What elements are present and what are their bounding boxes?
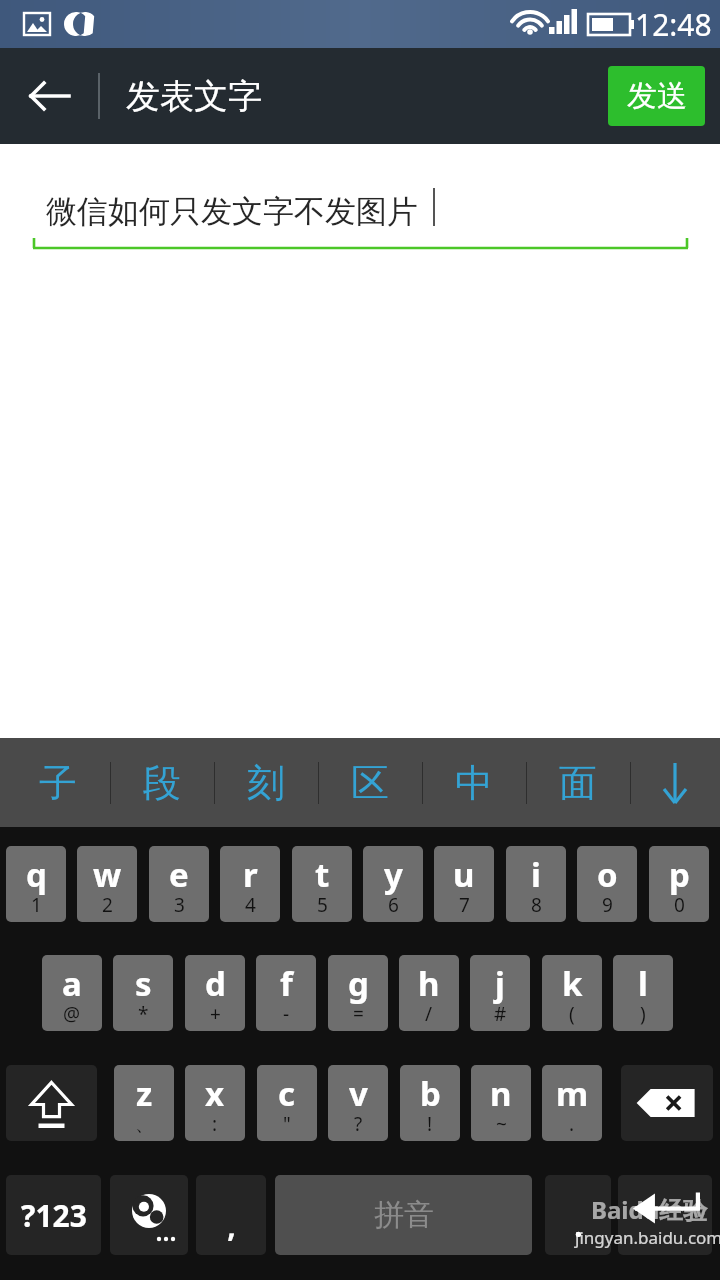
button[interactable]: 中 [422,738,526,827]
staticText: ( [569,1001,575,1027]
button[interactable]: x [185,1065,245,1141]
button[interactable]: g [328,955,388,1031]
staticText: 发送 [627,77,687,115]
button[interactable]: y [363,846,423,922]
button[interactable]: 拼音 [275,1175,532,1255]
button[interactable]: q [6,846,66,922]
staticText: 区 [351,759,389,807]
staticText: v [349,1071,368,1116]
staticText: p [669,852,690,897]
button[interactable]: p [649,846,709,922]
staticText: - [283,1001,290,1027]
staticText: d [205,961,226,1006]
staticText: s [135,961,152,1006]
staticText: k [562,961,583,1006]
button[interactable]: . [545,1175,611,1255]
staticText: 发表文字 [126,75,262,118]
staticText: 9 [602,892,613,918]
staticText: 刻 [247,759,285,807]
button[interactable]: f [256,955,316,1031]
staticText: 面 [559,759,597,807]
button[interactable]: 发送 [608,66,705,126]
button[interactable]: 刻 [214,738,318,827]
staticText: h [418,961,440,1006]
button[interactable]: v [328,1065,388,1141]
button[interactable]: 面 [526,738,630,827]
staticText: 1 [31,892,42,918]
button[interactable]: a [42,955,102,1031]
button[interactable]: , [196,1175,266,1255]
button[interactable]: k [542,955,602,1031]
button[interactable]: b [400,1065,460,1141]
staticText: . [569,1111,575,1137]
staticText: 子 [39,759,77,807]
staticText: / [425,1001,433,1027]
staticText: 0 [674,892,685,918]
button[interactable]: n [471,1065,531,1141]
button[interactable]: i [506,846,566,922]
staticText: a [62,961,82,1006]
staticText: ? [354,1111,363,1137]
button[interactable]: l [613,955,673,1031]
staticText: i [531,852,541,897]
button[interactable]: c [257,1065,317,1141]
button[interactable]: o [577,846,637,922]
staticText: ~ [496,1111,507,1137]
staticText: g [348,961,369,1006]
button[interactable]: Hide keyboard [630,738,720,827]
button[interactable]: 段 [110,738,214,827]
staticText: @ [63,1001,81,1027]
button[interactable]: j [470,955,530,1031]
staticText: Baidu经验 [591,1193,708,1226]
staticText: m [556,1071,589,1116]
staticText: 中 [455,759,493,807]
button[interactable]: h [399,955,459,1031]
staticText: : [212,1111,218,1137]
staticText: 12:48 [635,4,712,45]
staticText: 、 [135,1113,154,1137]
button[interactable]: Change keyboard language [110,1175,188,1255]
staticText: * [138,1001,149,1027]
button[interactable]: Shift [6,1065,97,1141]
button[interactable]: u [434,846,494,922]
button[interactable]: Backspace [621,1065,713,1141]
staticText: b [420,1071,441,1116]
button[interactable]: ?123 [6,1175,101,1255]
button[interactable]: w [77,846,137,922]
button[interactable]: t [292,846,352,922]
staticText: 8 [531,892,542,918]
staticText: 6 [388,892,399,918]
staticText: ! [427,1111,433,1137]
button[interactable]: d [185,955,245,1031]
button[interactable]: Back [14,60,86,132]
button[interactable]: z [114,1065,174,1141]
staticText: ) [640,1001,646,1027]
staticText: w [93,852,122,897]
staticText: l [638,961,648,1006]
button[interactable]: m [542,1065,602,1141]
button[interactable]: s [113,955,173,1031]
staticText: , [227,1205,236,1246]
button[interactable]: 区 [318,738,422,827]
staticText: f [280,961,293,1006]
staticText: " [283,1111,291,1137]
staticText: = [353,1001,364,1027]
staticText: q [26,852,47,897]
staticText: 2 [102,892,113,918]
staticText: n [490,1071,512,1116]
button[interactable]: Enter [618,1175,712,1255]
staticText: t [315,852,330,897]
staticText: c [278,1071,296,1116]
staticText: r [243,852,258,897]
staticText: jingyan.baidu.com [575,1226,720,1249]
staticText: 段 [143,759,181,807]
staticText: u [453,852,475,897]
button[interactable]: e [149,846,209,922]
staticText: o [597,852,618,897]
button[interactable]: r [220,846,280,922]
staticText: # [494,1001,507,1027]
button[interactable]: 子 [6,738,110,827]
staticText: 7 [459,892,470,918]
staticText: ?123 [21,1195,87,1236]
staticText: e [169,852,189,897]
